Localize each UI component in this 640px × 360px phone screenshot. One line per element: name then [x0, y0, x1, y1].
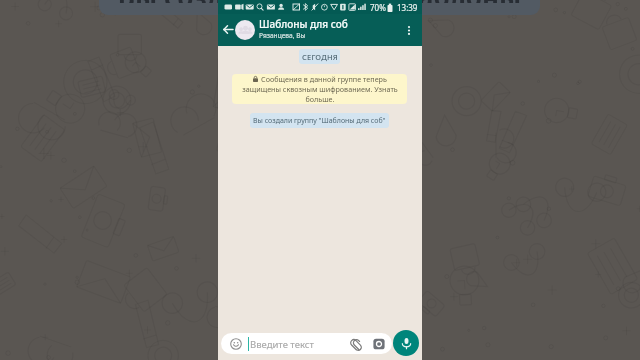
- button[interactable]: Вы создали группу "Шаблоны для соб": [250, 113, 389, 128]
- staticText: СЕГОДНЯ: [302, 52, 338, 62]
- staticText: Введите текст: [250, 338, 314, 351]
- button[interactable]: Сообщения в данной группе теперь: [232, 74, 407, 104]
- staticText: Сообщения в данной группе теперь: [261, 74, 387, 84]
- button[interactable]: Group photo: [235, 20, 255, 40]
- button[interactable]: More options: [402, 14, 416, 46]
- button[interactable]: Back: [219, 13, 236, 45]
- staticText: Вы создали группу "Шаблоны для соб": [99, 0, 540, 3]
- button[interactable]: Введите текст: [221, 333, 392, 354]
- staticText: Шаблоны для соб: [259, 17, 348, 31]
- staticText: 13:39: [397, 2, 418, 13]
- staticText: 70%: [370, 2, 386, 13]
- staticText: защищены сквозным шифрованием. Узнать: [242, 84, 398, 94]
- button[interactable]: СЕГОДНЯ: [299, 49, 340, 64]
- staticText: больше.: [305, 94, 335, 104]
- button[interactable]: Record voice message: [393, 330, 419, 356]
- staticText: Рязанцева, Вы: [259, 31, 306, 40]
- staticText: Вы создали группу "Шаблоны для соб": [253, 116, 386, 126]
